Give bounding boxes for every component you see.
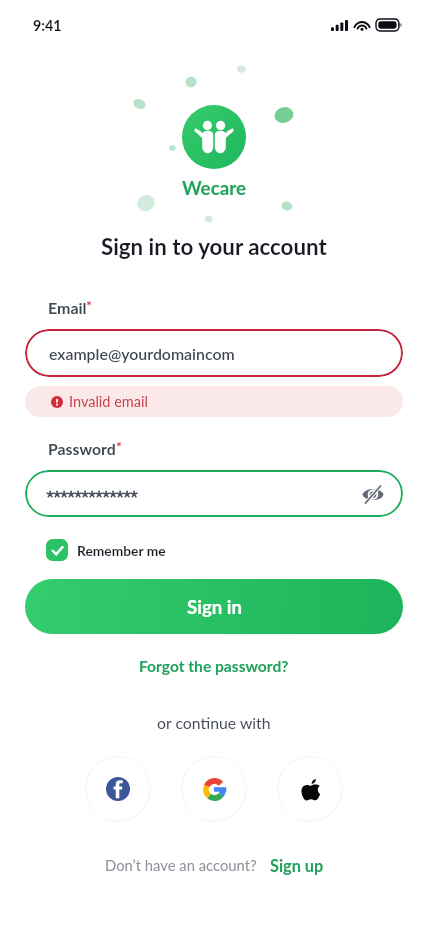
button[interactable]: Sign in with Apple bbox=[277, 756, 343, 822]
staticText: 9:41 bbox=[33, 17, 62, 34]
staticText: Password bbox=[48, 439, 116, 458]
button[interactable]: Show password bbox=[25, 470, 403, 517]
staticText: Don’t have an account? bbox=[105, 856, 257, 874]
staticText: * bbox=[116, 438, 122, 455]
button[interactable]: Sign in with Facebook bbox=[85, 756, 151, 822]
button[interactable]: Forgot the password? bbox=[131, 653, 297, 680]
staticText: * bbox=[86, 297, 92, 314]
button[interactable]: Show password bbox=[359, 480, 387, 508]
staticText: Sign in bbox=[187, 596, 242, 618]
staticText: Sign in to your account bbox=[101, 233, 327, 260]
staticText: Wecare bbox=[182, 176, 247, 199]
button[interactable]: example@yourdomaincom bbox=[25, 329, 403, 377]
button[interactable]: Sign in bbox=[25, 579, 403, 634]
button[interactable]: Remember me bbox=[46, 536, 166, 564]
staticText: Email bbox=[48, 298, 87, 317]
staticText: or continue with bbox=[157, 713, 271, 732]
button[interactable]: Sign in with Google bbox=[181, 756, 247, 822]
staticText: example@yourdomaincom bbox=[49, 344, 235, 363]
staticText: Remember me bbox=[77, 542, 166, 559]
button[interactable]: Sign up bbox=[270, 856, 324, 876]
staticText: Invalid email bbox=[69, 393, 148, 410]
